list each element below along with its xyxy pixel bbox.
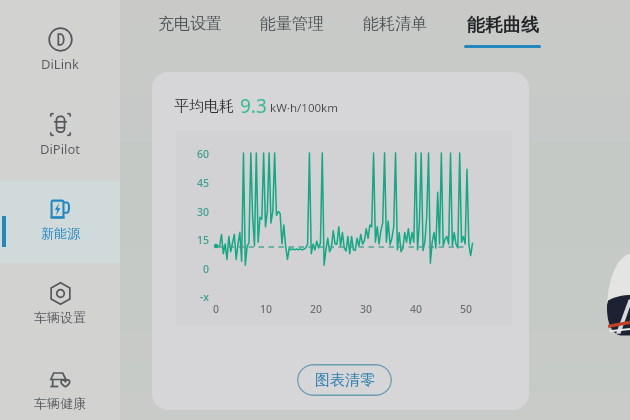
button[interactable]: 充电设置 bbox=[155, 14, 224, 50]
staticText: 车辆设置 bbox=[34, 309, 86, 325]
staticText: 0 bbox=[203, 262, 210, 276]
button[interactable]: 新能源 bbox=[0, 196, 120, 242]
staticText: 车辆健康 bbox=[34, 395, 86, 411]
staticText: 图表清零 bbox=[315, 371, 375, 390]
staticText: 充电设置 bbox=[158, 14, 222, 34]
button[interactable]: 车辆健康 bbox=[0, 366, 120, 412]
staticText: 9.3 bbox=[240, 93, 267, 119]
staticText: 30 bbox=[197, 205, 210, 219]
staticText: 40 bbox=[410, 302, 423, 316]
button[interactable]: 图表清零 bbox=[297, 364, 392, 396]
staticText: -x bbox=[200, 290, 210, 304]
staticText: 60 bbox=[197, 147, 210, 161]
staticText: DiLink bbox=[41, 55, 79, 72]
button[interactable]: DiLink bbox=[0, 26, 120, 72]
staticText: 能耗清单 bbox=[363, 14, 427, 34]
staticText: DiPilot bbox=[40, 140, 80, 157]
button[interactable]: 能耗清单 bbox=[360, 14, 430, 50]
button[interactable]: 能量管理 bbox=[256, 14, 328, 50]
button[interactable]: DiPilot bbox=[0, 111, 120, 157]
staticText: 能量管理 bbox=[260, 14, 324, 34]
staticText: 平均电耗 bbox=[174, 97, 234, 116]
staticText: 15 bbox=[197, 233, 210, 247]
staticText: 新能源 bbox=[41, 225, 80, 241]
button[interactable]: 能耗曲线 bbox=[463, 14, 543, 50]
staticText: 20 bbox=[310, 302, 323, 316]
staticText: 10 bbox=[260, 302, 273, 316]
staticText: 0 bbox=[213, 302, 220, 316]
staticText: 45 bbox=[197, 176, 210, 190]
staticText: 30 bbox=[360, 302, 373, 316]
staticText: 50 bbox=[460, 302, 473, 316]
staticText: kW·h/100km bbox=[270, 100, 338, 116]
button[interactable]: 车辆设置 bbox=[0, 280, 120, 326]
staticText: 能耗曲线 bbox=[467, 14, 539, 37]
